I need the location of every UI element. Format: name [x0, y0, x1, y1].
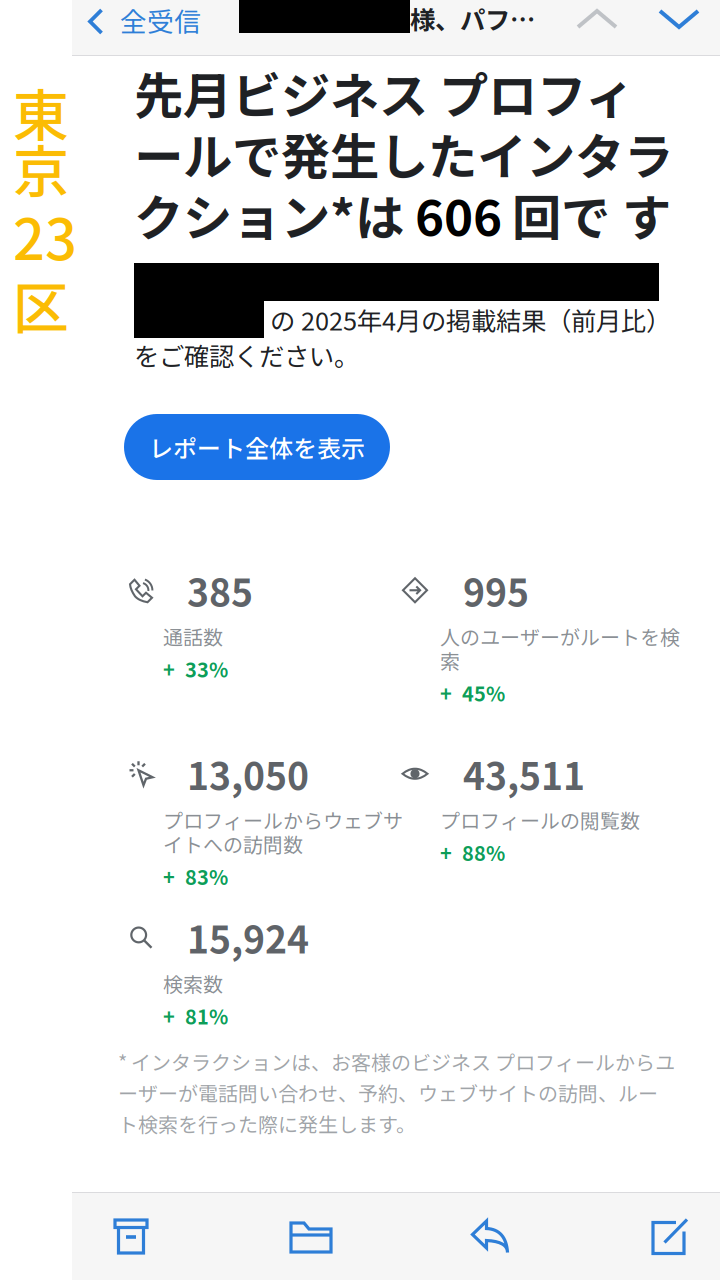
- staticText: 33%: [185, 654, 228, 683]
- staticText: ールで発生したインタラ: [134, 118, 673, 189]
- staticText: 通話数: [163, 622, 223, 651]
- staticText: 東: [13, 71, 69, 152]
- staticText: 995: [463, 563, 529, 617]
- staticText: 88%: [462, 838, 505, 867]
- button[interactable]: 全受信: [72, 0, 201, 55]
- staticText: +: [163, 1001, 175, 1030]
- button[interactable]: Reply: [446, 1193, 536, 1280]
- staticText: +: [440, 838, 452, 867]
- button[interactable]: Previous message: [576, 0, 618, 55]
- staticText: 先月ビジネス プロフィ: [134, 57, 634, 128]
- staticText: 385: [187, 563, 253, 617]
- staticText: +: [440, 678, 452, 707]
- staticText: プロフィールの閲覧数: [440, 805, 640, 834]
- staticText: レポート全体を表示: [149, 430, 365, 464]
- staticText: +: [163, 862, 175, 891]
- staticText: 23: [13, 195, 77, 276]
- staticText: イトへの訪問数: [163, 829, 303, 858]
- staticText: 43,511: [463, 747, 585, 801]
- button[interactable]: Archive: [86, 1193, 176, 1280]
- staticText: をご確認ください。: [134, 337, 359, 373]
- staticText: 45%: [462, 678, 505, 707]
- staticText: クション*は: [134, 179, 404, 250]
- staticText: 京: [13, 127, 69, 208]
- button[interactable]: Move to folder: [266, 1193, 356, 1280]
- staticText: 人のユーザーがルートを検: [440, 622, 680, 651]
- staticText: 13,050: [187, 747, 309, 801]
- staticText: 索: [440, 646, 460, 675]
- staticText: 全受信: [120, 1, 201, 39]
- staticText: 15,924: [187, 910, 309, 964]
- staticText: ト検索を行った際に発生します。: [118, 1109, 416, 1138]
- staticText: プロフィールからウェブサ: [163, 805, 403, 834]
- staticText: ーザーが電話問い合わせ、予約、ウェブサイトの訪問、ルー: [118, 1078, 658, 1107]
- button[interactable]: Next message: [658, 0, 700, 55]
- staticText: +: [163, 654, 175, 683]
- staticText: * インタラクションは、お客様のビジネス プロフィールからユ: [118, 1047, 675, 1076]
- staticText: 606: [415, 179, 502, 250]
- staticText: の 2025年4月の掲載結果（前月比）: [270, 301, 671, 338]
- staticText: 検索数: [163, 969, 223, 998]
- staticText: 81%: [185, 1001, 228, 1030]
- button[interactable]: Compose: [625, 1193, 715, 1280]
- staticText: す: [622, 179, 671, 250]
- staticText: 様、パフ…: [410, 0, 535, 37]
- staticText: 83%: [185, 862, 228, 891]
- staticText: 回で: [512, 179, 610, 250]
- button[interactable]: レポート全体を表示: [124, 414, 390, 480]
- staticText: 区: [13, 263, 69, 345]
